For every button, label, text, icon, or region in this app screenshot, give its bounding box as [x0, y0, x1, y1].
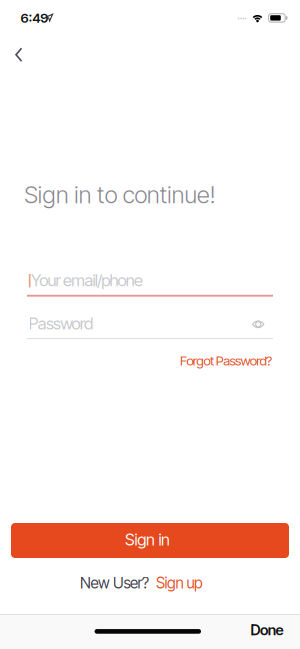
staticText: Forgot Password?: [180, 353, 272, 369]
button[interactable]: Forgot Password?: [180, 353, 272, 369]
button[interactable]: Sign in: [11, 523, 289, 558]
staticText: New User?: [80, 574, 149, 592]
button[interactable]: Done: [250, 617, 283, 643]
staticText: Sign in to continue!: [24, 180, 215, 209]
staticText: Done: [250, 621, 283, 639]
staticText: 6:49: [20, 10, 48, 26]
staticText: Sign in: [125, 530, 170, 549]
staticText: Sign up: [156, 574, 203, 592]
staticText: Password: [28, 313, 93, 334]
staticText: Your email/phone: [31, 270, 143, 290]
button[interactable]: Show password: [251, 318, 265, 330]
button[interactable]: Sign up: [156, 574, 203, 592]
button[interactable]: Back: [4, 36, 34, 74]
